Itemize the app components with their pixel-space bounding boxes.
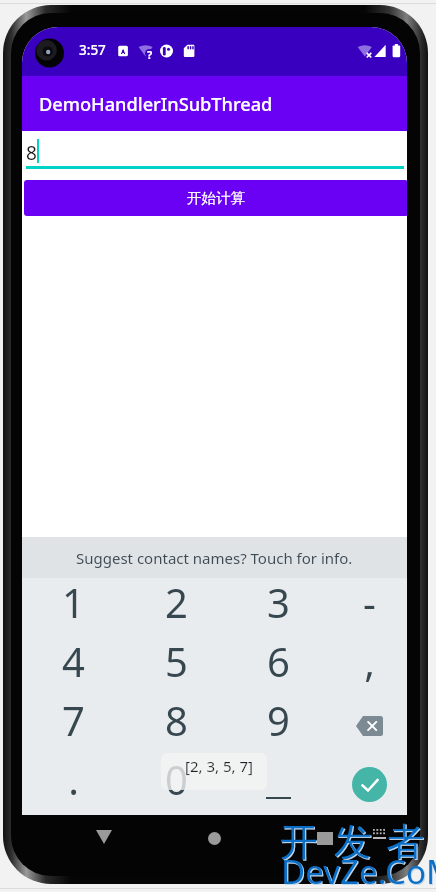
button[interactable]: 6 xyxy=(227,637,330,696)
staticText: 8 xyxy=(26,140,37,166)
button[interactable]: DemoHandlerInSubThread xyxy=(22,76,407,132)
button[interactable]: Home xyxy=(188,815,241,862)
button[interactable]: . xyxy=(22,755,125,814)
staticText: 开 xyxy=(280,818,318,866)
button[interactable]: - xyxy=(330,578,407,637)
staticText: 0 xyxy=(165,752,188,806)
staticText: 1 xyxy=(62,575,85,629)
staticText: 8 xyxy=(165,693,188,747)
button[interactable]: 3 xyxy=(227,578,330,637)
staticText: 发 xyxy=(335,819,373,867)
staticText: Suggest contact names? Touch for info. xyxy=(76,548,353,568)
staticText: 7 xyxy=(62,693,85,747)
staticText: 3 xyxy=(267,575,290,629)
staticText: 发 xyxy=(334,818,372,866)
staticText: 2 xyxy=(165,575,188,629)
staticText: 者 xyxy=(387,819,425,867)
button[interactable]: 9 xyxy=(227,696,330,755)
staticText: 者 xyxy=(386,818,424,866)
button[interactable]: 2 xyxy=(125,578,228,637)
staticText: 5 xyxy=(165,634,188,688)
button[interactable]: 5 xyxy=(125,637,228,696)
staticText: 3:57 xyxy=(79,41,106,59)
staticText: DevZe.CoM xyxy=(281,849,436,892)
button[interactable]: 0 xyxy=(125,755,228,814)
staticText: ? xyxy=(147,47,153,62)
button[interactable]: 1 xyxy=(22,578,125,637)
staticText: 9 xyxy=(267,693,290,747)
staticText: . xyxy=(68,752,79,806)
staticText: 6 xyxy=(267,634,290,688)
button[interactable]: 8 xyxy=(22,131,407,175)
staticText: DevZe.CoM xyxy=(282,850,436,892)
staticText: [2, 3, 5, 7] xyxy=(185,756,253,776)
button[interactable]: 7 xyxy=(22,696,125,755)
staticText: , xyxy=(364,634,375,688)
staticText: 开始计算 xyxy=(187,189,246,207)
button[interactable]: Back xyxy=(77,815,130,859)
staticText: DemoHandlerInSubThread xyxy=(39,92,273,117)
button[interactable]: 4 xyxy=(22,637,125,696)
button[interactable]: Backspace xyxy=(330,696,407,755)
staticText: 开 xyxy=(281,819,319,867)
staticText: - xyxy=(363,575,376,629)
button[interactable]: Space xyxy=(227,755,330,814)
staticText: 4 xyxy=(62,634,85,688)
button[interactable]: 8 xyxy=(125,696,228,755)
button[interactable]: Suggest contact names? Touch for info. xyxy=(22,537,407,578)
button[interactable]: 开始计算 xyxy=(24,180,407,216)
button[interactable]: Enter xyxy=(330,755,407,814)
button[interactable]: , xyxy=(330,637,407,696)
